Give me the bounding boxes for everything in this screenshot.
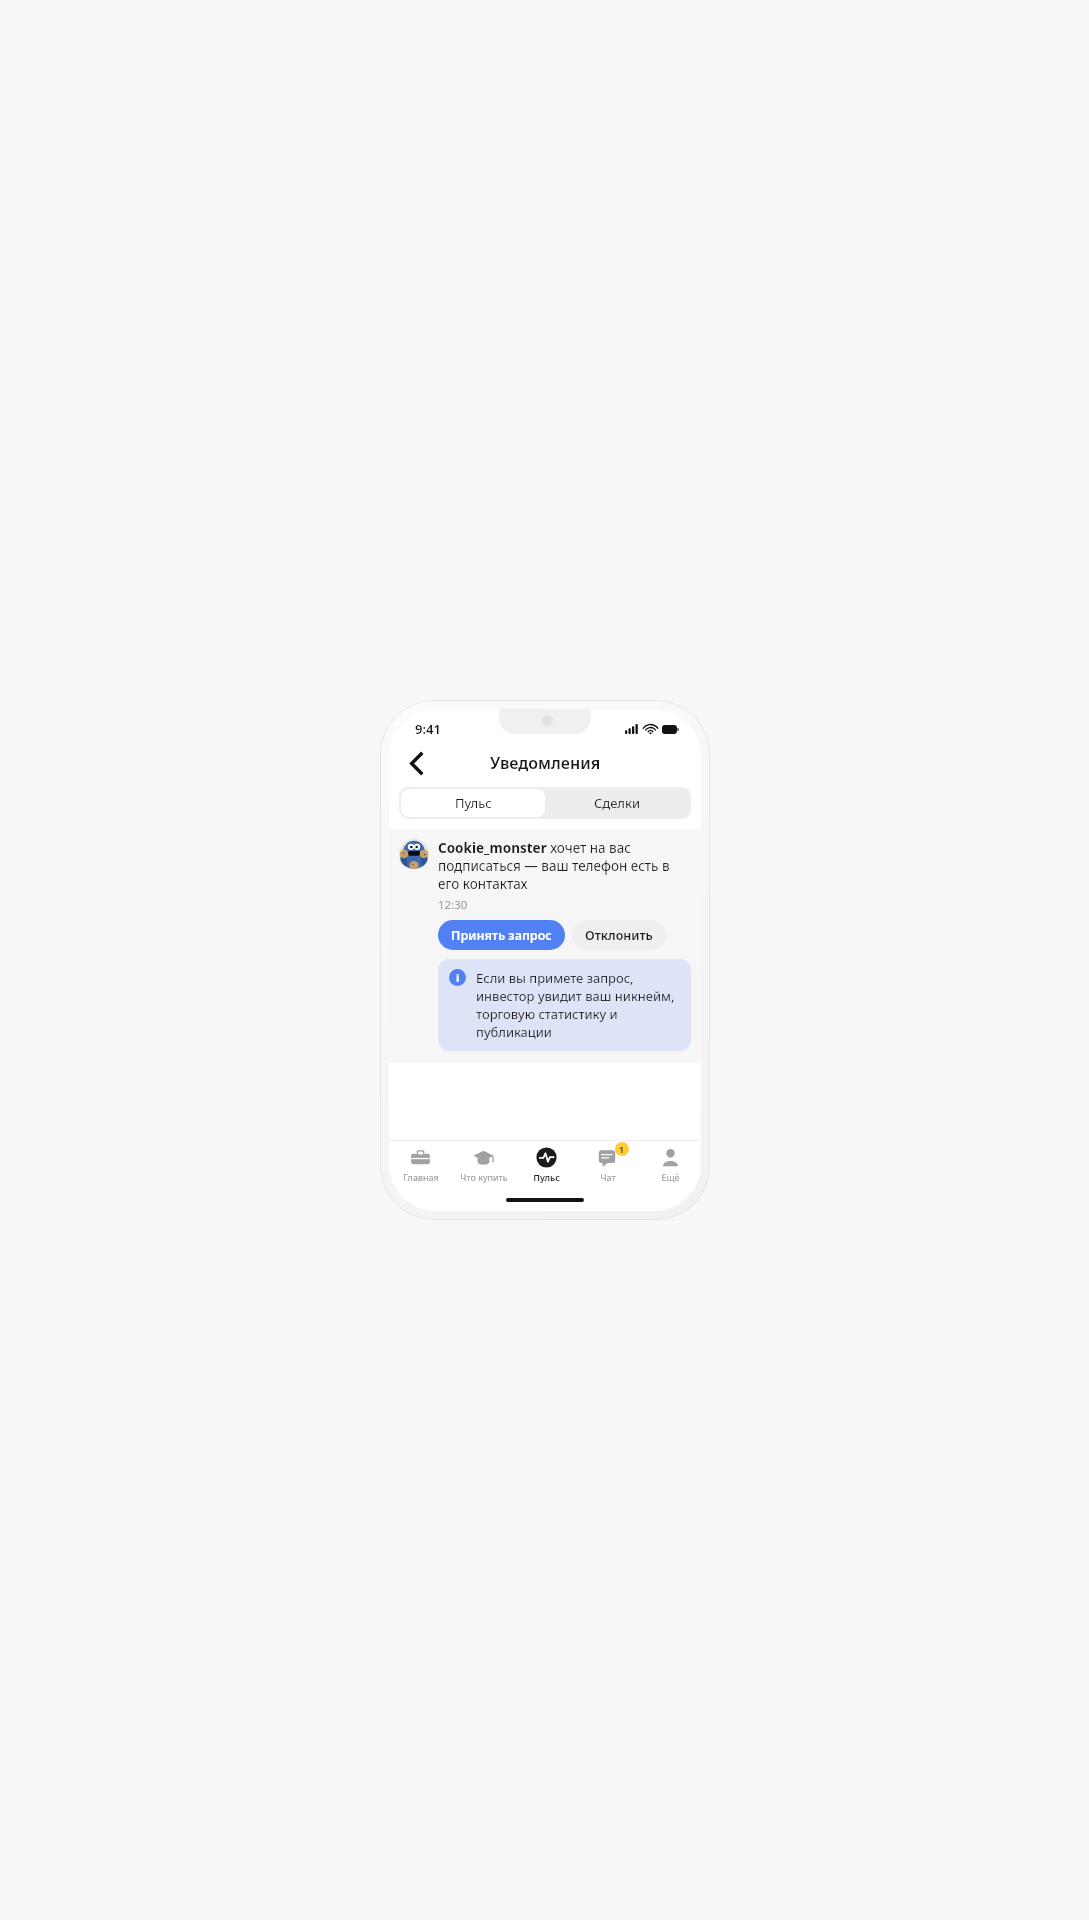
- button[interactable]: Ещё: [639, 1141, 701, 1189]
- staticText: Отклонить: [585, 927, 653, 944]
- staticText: Пульс: [455, 794, 492, 812]
- button[interactable]: Отклонить: [572, 920, 666, 950]
- staticText: Если вы примете запрос, инвестор увидит …: [476, 969, 680, 1041]
- staticText: Чат: [600, 1171, 616, 1183]
- staticText: i: [456, 970, 460, 985]
- button[interactable]: Сделки: [545, 789, 689, 817]
- button[interactable]: Пульс: [401, 789, 545, 817]
- staticText: Сделки: [594, 794, 640, 812]
- button[interactable]: 1: [577, 1141, 639, 1189]
- staticText: Уведомления: [490, 752, 601, 774]
- button[interactable]: Главная: [389, 1141, 452, 1189]
- button[interactable]: Назад: [397, 744, 435, 782]
- staticText: Пульс: [533, 1171, 560, 1183]
- staticText: Принять запрос: [451, 927, 552, 944]
- button[interactable]: Что купить: [452, 1141, 515, 1189]
- button[interactable]: Пульс: [515, 1141, 577, 1189]
- staticText: 12:30: [438, 897, 468, 913]
- button[interactable]: Аватар Cookie_monster: [399, 839, 429, 869]
- staticText: 9:41: [415, 720, 441, 738]
- staticText: Что купить: [460, 1171, 508, 1183]
- staticText: Главная: [403, 1171, 439, 1183]
- staticText: Ещё: [661, 1171, 680, 1183]
- staticText: Cookie_monster хочет на вас подписаться …: [438, 839, 691, 893]
- button[interactable]: Принять запрос: [438, 920, 565, 950]
- staticText: 1: [619, 1143, 625, 1155]
